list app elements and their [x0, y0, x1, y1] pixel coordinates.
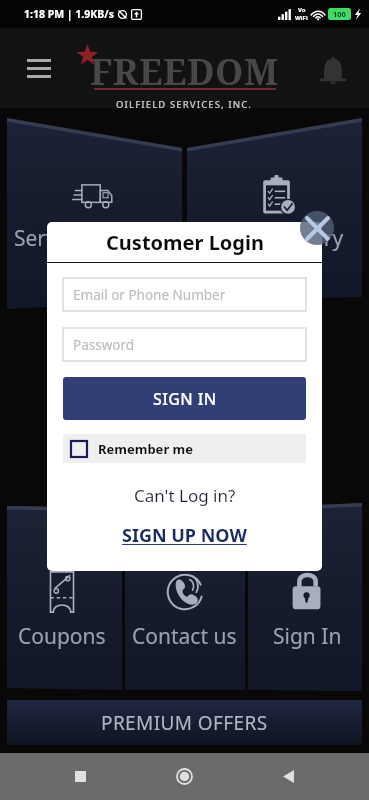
button[interactable]: Remember me [63, 434, 306, 463]
staticText: 1:18 PM | 1.9KB/s [24, 7, 114, 21]
staticText: Contact us [132, 622, 237, 651]
staticText: SIGN UP NOW [122, 523, 247, 548]
staticText: Order History [209, 224, 344, 252]
staticText: FREEDOM [90, 47, 279, 96]
button[interactable]: Coupons [0, 568, 123, 658]
button[interactable]: SIGN IN [63, 377, 306, 420]
staticText: 100 [333, 9, 346, 19]
staticText: Service Request [14, 224, 170, 252]
staticText: Vo [298, 6, 306, 14]
button[interactable]: Can't Log in? [63, 484, 306, 507]
button[interactable]: Contact us [123, 568, 246, 658]
staticText: Password [73, 336, 135, 354]
button[interactable]: Sign In [246, 568, 369, 658]
button[interactable]: Notifications [313, 50, 353, 90]
staticText: PREMIUM OFFERS [101, 710, 268, 736]
button[interactable]: Email or Phone Number [63, 278, 306, 311]
button[interactable]: Service Request [0, 172, 184, 252]
staticText: Email or Phone Number [73, 286, 226, 304]
staticText: SIGN IN [153, 388, 217, 410]
staticText: Coupons [18, 622, 106, 651]
staticText: Sign In [273, 622, 342, 651]
button[interactable]: Password [63, 328, 306, 361]
button[interactable]: Home [161, 753, 208, 800]
button[interactable]: Close [300, 211, 334, 245]
staticText: OILFIELD SERVICES, INC. [116, 98, 253, 111]
button[interactable]: Recents [57, 753, 104, 800]
staticText: Customer Login [106, 229, 264, 256]
button[interactable]: SIGN UP NOW [63, 523, 306, 548]
staticText: WiFi [295, 14, 308, 22]
button[interactable]: Order History [184, 172, 369, 252]
button[interactable]: PREMIUM OFFERS [7, 700, 362, 745]
button[interactable]: Menu [19, 53, 59, 93]
staticText: Can't Log in? [134, 484, 236, 507]
staticText: Remember me [98, 440, 194, 458]
button[interactable]: Back [265, 753, 312, 800]
